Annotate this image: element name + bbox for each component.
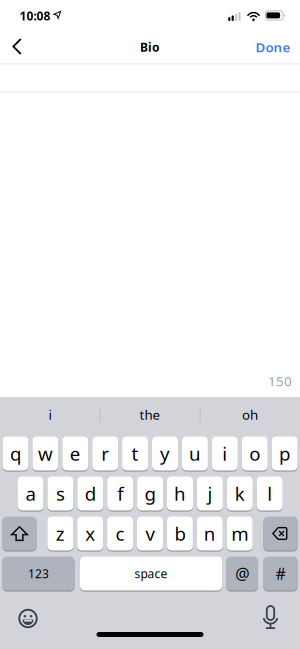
button[interactable]: x — [77, 516, 103, 551]
button[interactable]: the — [102, 399, 198, 429]
button[interactable]: d — [77, 476, 103, 511]
button[interactable]: f — [107, 476, 133, 511]
button[interactable]: p — [272, 436, 298, 471]
staticText: 123 — [28, 565, 49, 581]
button[interactable]: z — [47, 516, 73, 551]
button[interactable]: b — [167, 516, 193, 551]
button[interactable]: u — [182, 436, 208, 471]
staticText: i — [48, 406, 51, 423]
button[interactable]: s — [47, 476, 73, 511]
button[interactable]: j — [197, 476, 223, 511]
staticText: j — [207, 481, 212, 506]
button[interactable]: Back — [4, 31, 34, 61]
staticText: q — [10, 441, 21, 466]
button[interactable]: n — [197, 516, 223, 551]
button[interactable]: Done — [255, 38, 290, 56]
button[interactable]: o — [242, 436, 268, 471]
staticText: 150 — [268, 372, 292, 390]
staticText: t — [132, 441, 139, 466]
staticText: g — [145, 481, 156, 506]
staticText: o — [249, 441, 260, 466]
button[interactable]: Delete — [263, 516, 297, 551]
staticText: Bio — [140, 39, 160, 55]
staticText: # — [275, 563, 285, 584]
button[interactable]: space — [80, 556, 222, 591]
staticText: the — [139, 406, 160, 423]
staticText: a — [25, 481, 35, 506]
button[interactable]: Dictation — [259, 605, 281, 631]
button[interactable]: e — [62, 436, 88, 471]
button[interactable]: oh — [202, 399, 298, 429]
button[interactable]: i — [2, 399, 98, 429]
staticText: u — [189, 441, 201, 466]
staticText: r — [101, 441, 109, 466]
staticText: s — [56, 481, 65, 506]
button[interactable]: Emoji — [17, 607, 39, 629]
button[interactable]: r — [92, 436, 118, 471]
button[interactable]: w — [32, 436, 58, 471]
button[interactable]: a — [17, 476, 43, 511]
button[interactable]: t — [122, 436, 148, 471]
staticText: y — [160, 441, 170, 466]
staticText: f — [117, 481, 123, 506]
button[interactable]: v — [137, 516, 163, 551]
staticText: e — [70, 441, 81, 466]
staticText: w — [38, 441, 53, 466]
button[interactable]: h — [167, 476, 193, 511]
staticText: x — [85, 521, 95, 546]
button[interactable]: # — [263, 556, 297, 591]
staticText: b — [174, 521, 185, 546]
staticText: 10:08 — [19, 8, 50, 24]
button[interactable]: i — [212, 436, 238, 471]
staticText: space — [134, 565, 167, 581]
button[interactable]: m — [227, 516, 253, 551]
button[interactable]: Shift — [2, 516, 36, 551]
button[interactable]: q — [2, 436, 28, 471]
staticText: p — [279, 441, 290, 466]
button[interactable]: c — [107, 516, 133, 551]
staticText: h — [174, 481, 186, 506]
button[interactable]: l — [257, 476, 283, 511]
staticText: oh — [242, 406, 258, 423]
staticText: v — [145, 521, 154, 546]
staticText: z — [56, 521, 65, 546]
staticText: m — [231, 521, 248, 546]
staticText: i — [222, 441, 227, 466]
staticText: c — [116, 521, 125, 546]
staticText: Done — [255, 38, 290, 56]
button[interactable]: @ — [226, 556, 258, 591]
button[interactable]: y — [152, 436, 178, 471]
button[interactable]: k — [227, 476, 253, 511]
staticText: n — [204, 521, 216, 546]
staticText: d — [85, 481, 96, 506]
button[interactable]: 123 — [2, 556, 74, 591]
staticText: k — [235, 481, 245, 506]
staticText: @ — [235, 563, 249, 584]
button[interactable]: g — [137, 476, 163, 511]
staticText: l — [267, 481, 272, 506]
